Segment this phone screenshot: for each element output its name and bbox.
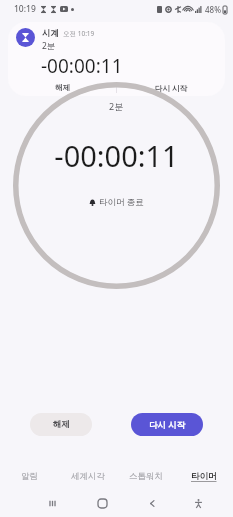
button[interactable]: Back (127, 490, 177, 517)
staticText: 알림 (21, 471, 38, 482)
staticText: -00:00:11 (41, 53, 123, 79)
staticText: 2분 (42, 40, 56, 52)
staticText: 다시 시작 (155, 83, 187, 93)
button[interactable]: Recent apps (27, 490, 77, 517)
button[interactable]: Accessibility (177, 490, 220, 517)
staticText: 타이머 (191, 471, 217, 482)
button[interactable]: 세계시각 (59, 462, 117, 490)
staticText: -00:00:11 (54, 136, 179, 175)
staticText: 다시 시작 (149, 419, 186, 431)
staticText: 타이머 종료 (99, 196, 144, 208)
button[interactable]: 알림 (0, 462, 59, 490)
staticText: 10:19 (14, 3, 36, 15)
staticText: 오전 10:19 (63, 29, 95, 38)
staticText: 48% (205, 4, 221, 15)
button[interactable]: 스톱워치 (117, 462, 175, 490)
button[interactable]: 시계 (8, 22, 225, 96)
button[interactable]: 타이머 (175, 462, 233, 490)
staticText: 해제 (55, 83, 70, 92)
button[interactable]: 해제 (8, 79, 116, 96)
staticText: 해제 (53, 419, 70, 430)
staticText: 스톱워치 (129, 471, 163, 482)
button[interactable]: 다시 시작 (131, 413, 203, 436)
staticText: 2분 (109, 100, 124, 112)
button[interactable]: Home (77, 490, 127, 517)
staticText: 시계 (42, 28, 59, 39)
staticText: 세계시각 (71, 471, 105, 482)
button[interactable]: 다시 시작 (117, 79, 225, 96)
button[interactable]: 해제 (30, 413, 92, 436)
